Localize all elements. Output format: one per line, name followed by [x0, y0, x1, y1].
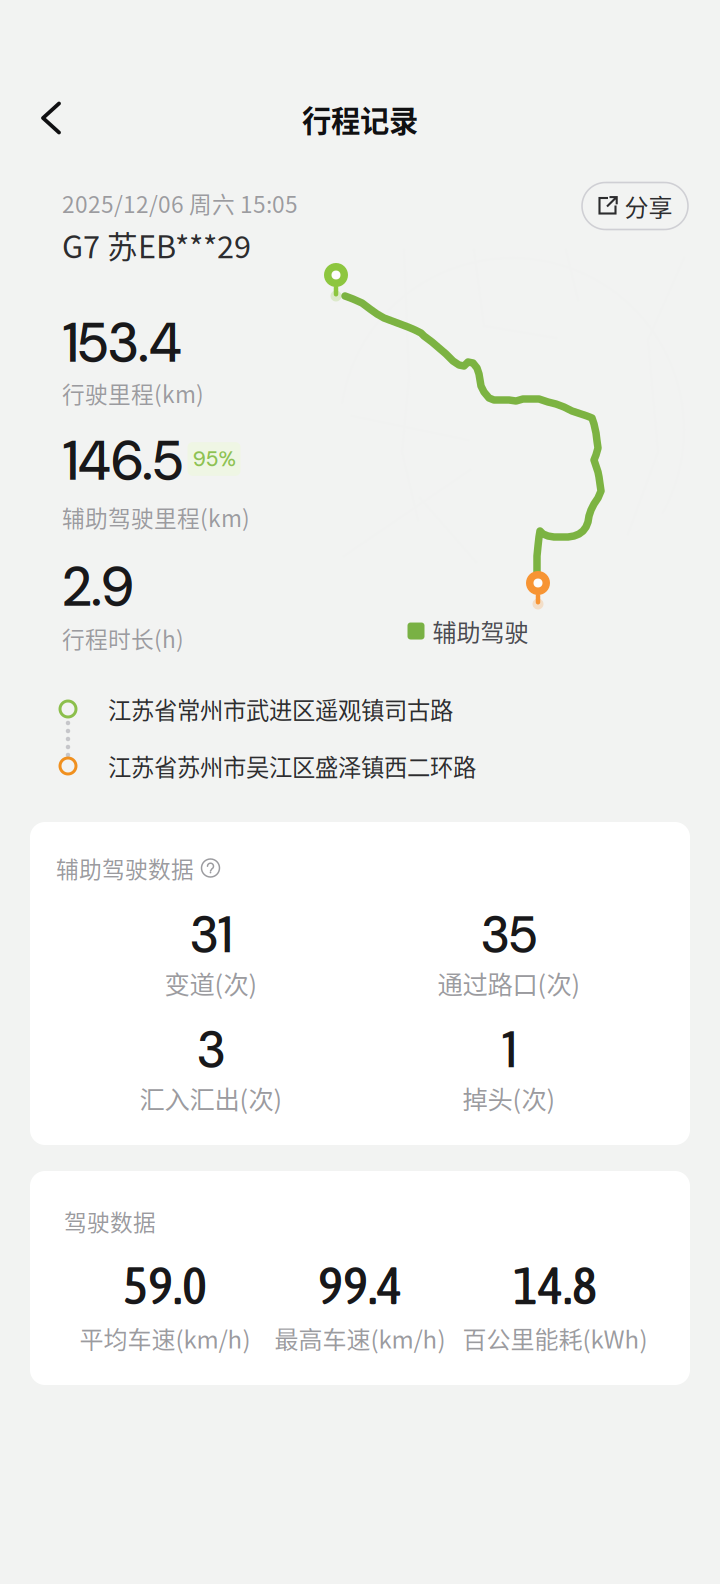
staticText: 百公里能耗(kWh)	[462, 1321, 647, 1355]
staticText: 31	[190, 902, 232, 968]
staticText: 辅助驾驶	[432, 614, 528, 648]
staticText: 146.5	[63, 425, 183, 497]
staticText: 153.4	[63, 307, 182, 379]
staticText: 行驶里程(km)	[62, 377, 204, 409]
staticText: 14.8	[513, 1254, 597, 1315]
staticText: 江苏省常州市武进区遥观镇司古路	[108, 692, 453, 726]
staticText: 最高车速(km/h)	[274, 1321, 445, 1355]
staticText: 通过路口(次)	[437, 965, 580, 1001]
staticText: 3	[197, 1017, 225, 1083]
staticText: 95%	[192, 445, 235, 473]
staticText: 2025/12/06 周六 15:05	[62, 187, 298, 219]
button[interactable]: 分享	[582, 182, 688, 229]
staticText: 江苏省苏州市吴江区盛泽镇西二环路	[108, 749, 476, 783]
staticText: 1	[502, 1017, 516, 1083]
button[interactable]: 返回	[21, 88, 81, 148]
staticText: 35	[481, 902, 537, 968]
staticText: 行程记录	[302, 98, 418, 140]
staticText: G7 苏EB***29	[62, 223, 251, 267]
staticText: 辅助驾驶里程(km)	[62, 501, 250, 533]
staticText: 99.4	[318, 1254, 402, 1315]
staticText: 辅助驾驶数据	[56, 852, 194, 884]
staticText: 2.9	[63, 551, 134, 623]
staticText: 驾驶数据	[64, 1205, 156, 1237]
staticText: 掉头(次)	[462, 1080, 555, 1116]
staticText: 平均车速(km/h)	[79, 1321, 250, 1355]
staticText: 59.0	[123, 1254, 207, 1315]
staticText: 行程时长(h)	[62, 622, 184, 654]
staticText: 分享	[624, 189, 672, 223]
staticText: 汇入汇出(次)	[139, 1080, 282, 1116]
staticText: 变道(次)	[164, 965, 257, 1001]
